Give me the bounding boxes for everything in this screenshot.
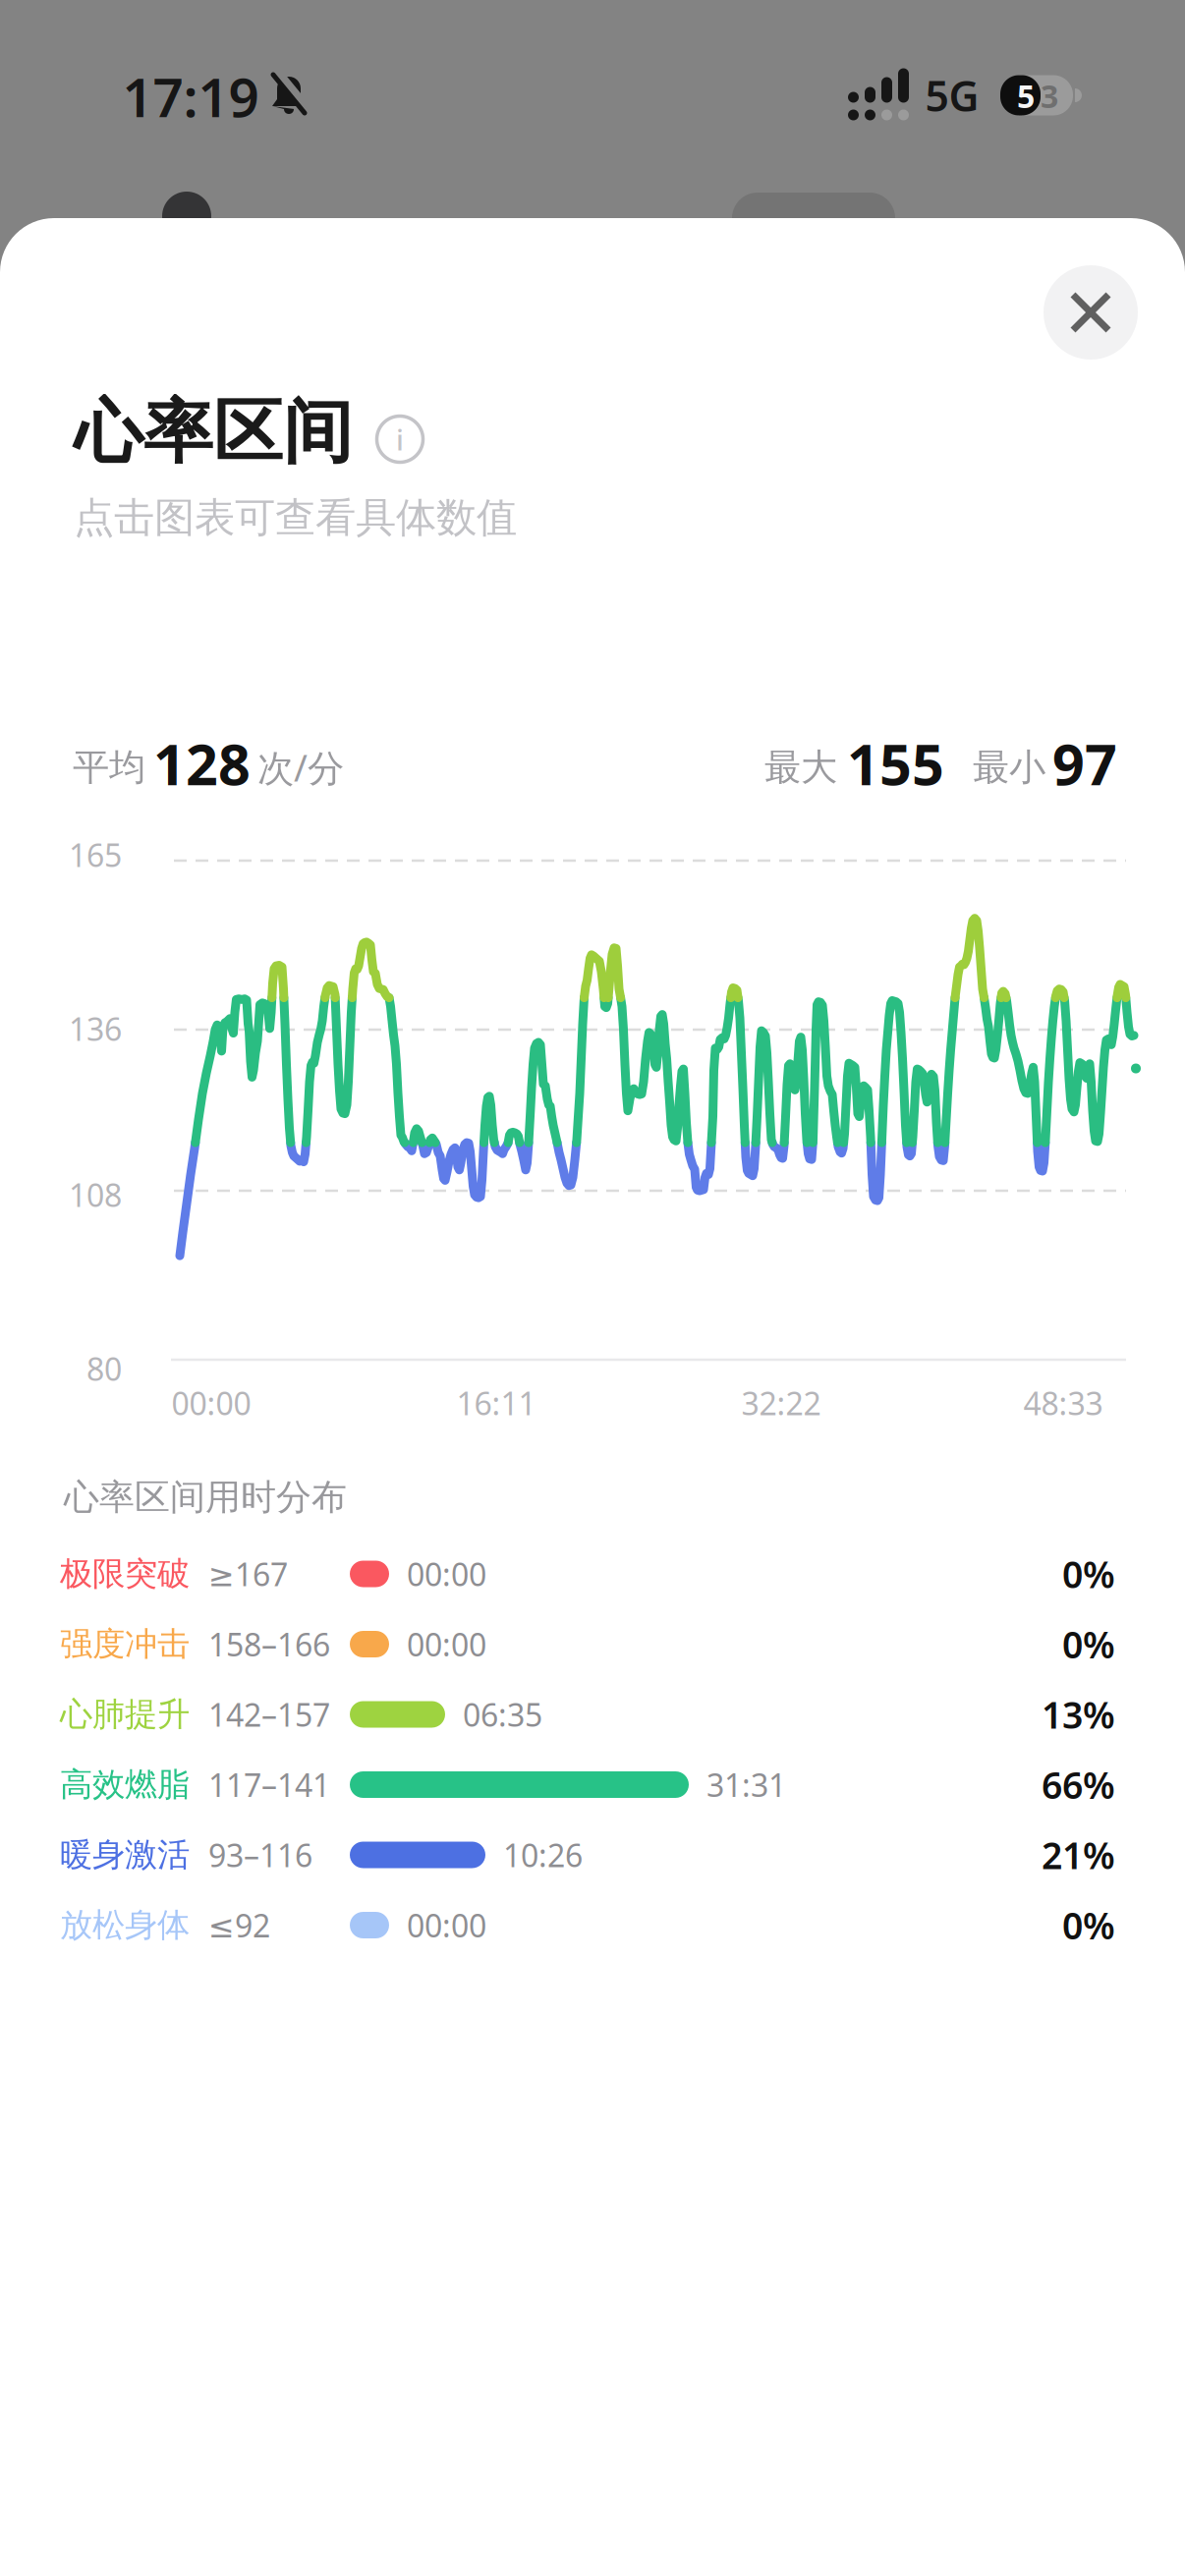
staticText: 0%	[1062, 1550, 1115, 1598]
staticText: 次/分	[257, 743, 344, 792]
staticText: 128	[153, 726, 251, 801]
staticText: 5G	[925, 67, 979, 123]
staticText: 平均	[73, 745, 145, 790]
staticText: 00:00	[407, 1904, 486, 1946]
staticText: 心肺提升	[60, 1694, 190, 1734]
staticText: 97	[1052, 726, 1117, 801]
staticText: ≤92	[208, 1904, 270, 1946]
staticText: 00:00	[407, 1623, 486, 1665]
staticText: 32:22	[741, 1382, 821, 1424]
staticText: 放松身体	[60, 1905, 190, 1945]
staticText: 最小	[973, 745, 1045, 790]
staticText: 00:00	[171, 1382, 251, 1424]
staticText: i	[396, 420, 404, 458]
staticText: 最大	[764, 745, 837, 790]
staticText: 强度冲击	[60, 1624, 190, 1664]
staticText: 155	[847, 726, 944, 801]
staticText: 17:19	[122, 61, 259, 132]
staticText: 极限突破	[60, 1554, 190, 1594]
staticText: 16:11	[456, 1382, 536, 1424]
staticText: 点击图表可查看具体数值	[74, 493, 517, 543]
staticText: 00:00	[407, 1553, 486, 1595]
staticText: 06:35	[463, 1694, 542, 1735]
staticText: 136	[69, 1008, 122, 1050]
staticText: 高效燃脂	[60, 1764, 190, 1805]
staticText: 48:33	[1023, 1382, 1103, 1424]
staticText: 165	[69, 834, 122, 876]
staticText: 暖身激活	[60, 1835, 190, 1875]
staticText: 31:31	[706, 1764, 786, 1806]
staticText: 0%	[1062, 1620, 1115, 1669]
staticText: 5	[1017, 75, 1035, 117]
staticText: ≥167	[208, 1553, 288, 1595]
button[interactable]: About heart rate zones	[374, 414, 425, 465]
staticText: 142–157	[208, 1694, 330, 1735]
staticText: 13%	[1042, 1690, 1115, 1739]
staticText: 21%	[1042, 1831, 1115, 1879]
staticText: 66%	[1042, 1760, 1115, 1809]
staticText: 3	[1041, 75, 1058, 117]
button[interactable]: 查看具体数值	[145, 820, 1138, 1390]
staticText: 117–141	[208, 1764, 330, 1806]
staticText: 93–116	[208, 1834, 312, 1876]
button[interactable]: Close	[1044, 265, 1138, 360]
staticText: 心率区间用时分布	[64, 1476, 347, 1519]
staticText: 80	[86, 1348, 122, 1389]
staticText: 158–166	[208, 1623, 330, 1665]
staticText: 10:26	[503, 1834, 583, 1876]
staticText: 心率区间	[74, 390, 353, 475]
staticText: 0%	[1062, 1901, 1115, 1949]
staticText: 108	[69, 1174, 122, 1216]
